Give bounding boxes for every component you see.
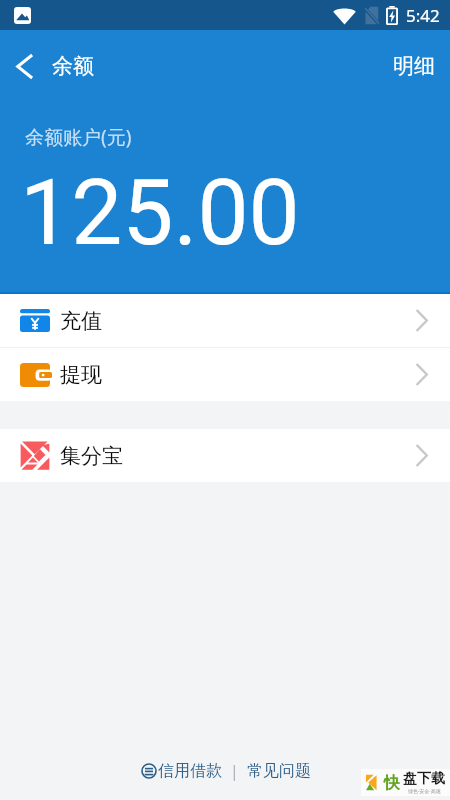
button[interactable]: Back xyxy=(0,53,106,79)
staticText: 5:42 xyxy=(406,4,440,27)
button[interactable]: 信用借款 xyxy=(141,761,222,781)
staticText: | xyxy=(230,760,239,782)
button[interactable]: 明细 xyxy=(377,45,450,87)
staticText: 盘下载 xyxy=(403,770,445,788)
staticText: 明细 xyxy=(393,53,435,79)
staticText: 绿色·安全·高速 xyxy=(408,788,441,795)
staticText: 提现 xyxy=(60,362,102,388)
staticText: 常见问题 xyxy=(247,761,311,781)
staticText: 余额 xyxy=(52,53,94,79)
button[interactable]: 提现 xyxy=(0,348,450,401)
other: Back xyxy=(16,54,33,79)
staticText: 充值 xyxy=(60,308,102,334)
button[interactable]: 集分宝 xyxy=(0,429,450,482)
staticText: 快 xyxy=(384,773,400,793)
staticText: 集分宝 xyxy=(60,443,123,469)
button[interactable]: 充值 xyxy=(0,294,450,347)
staticText: 信用借款 xyxy=(158,761,222,781)
staticText: 125.00 xyxy=(20,160,300,267)
button[interactable]: 常见问题 xyxy=(247,761,311,781)
staticText: 余额账户(元) xyxy=(25,124,132,150)
